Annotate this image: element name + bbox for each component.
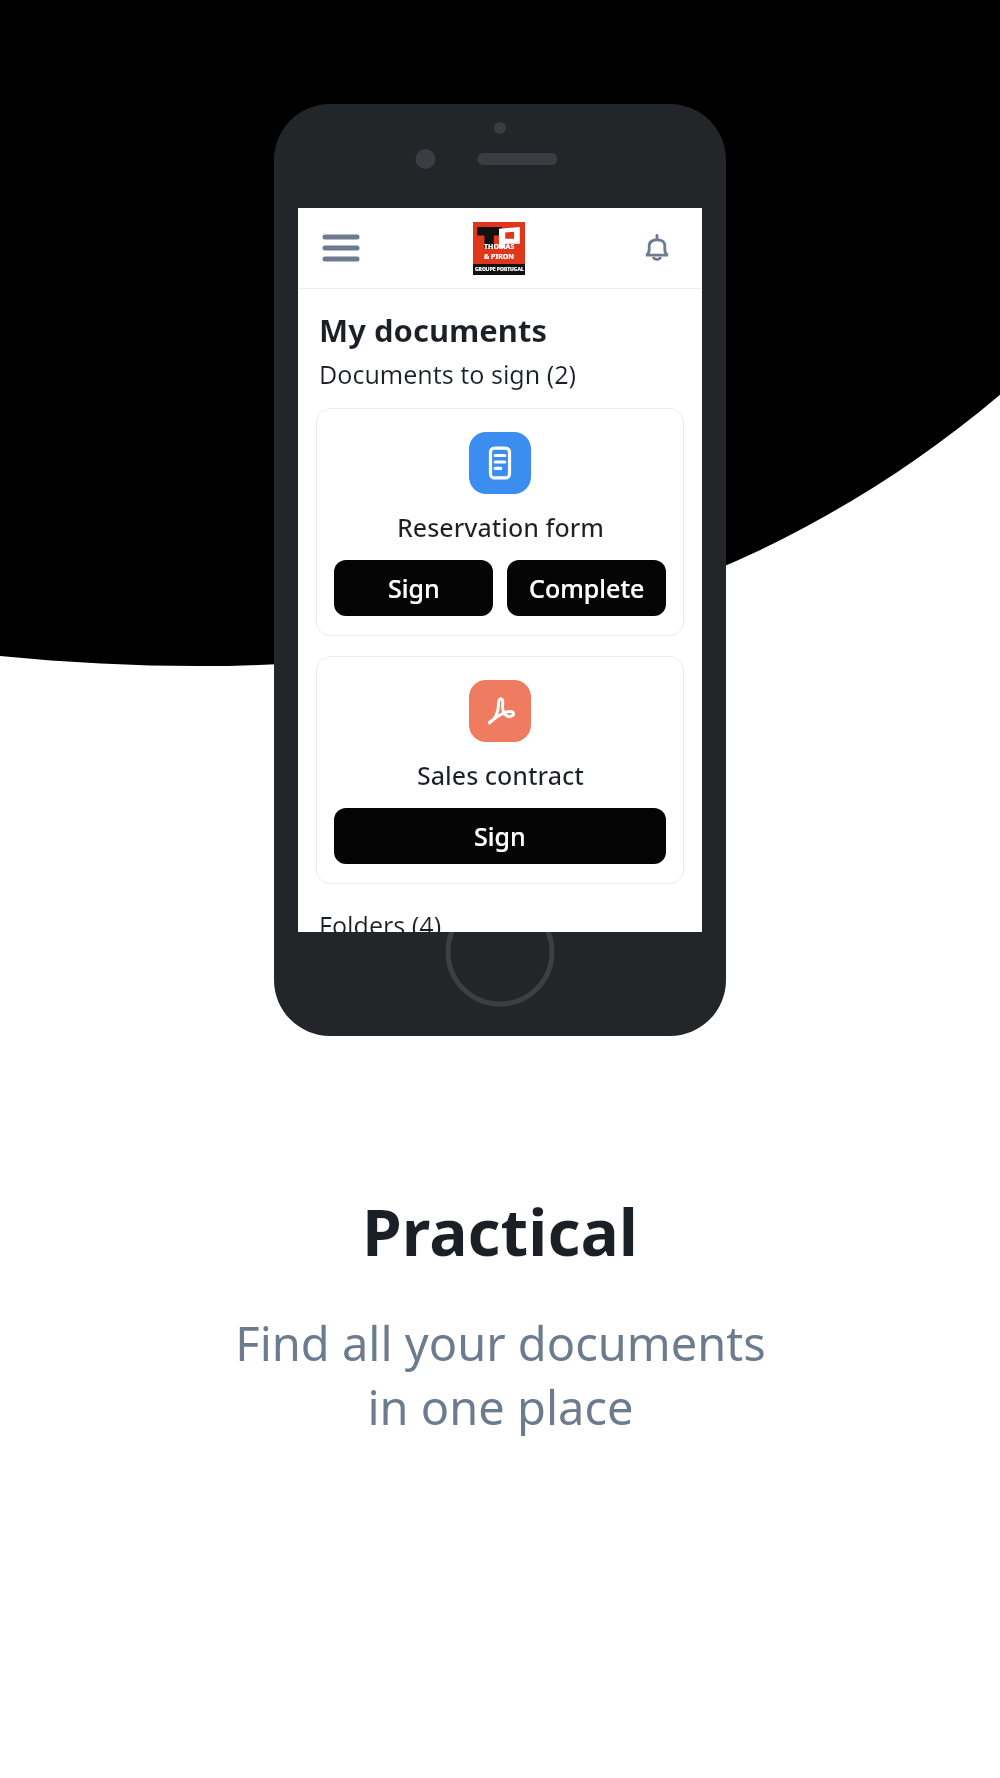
staticText: Sign xyxy=(388,571,440,605)
button[interactable]: Menu xyxy=(318,225,364,271)
staticText: Reservation form xyxy=(397,510,604,544)
staticText: THOMAS xyxy=(484,242,515,252)
staticText: Folders (4) xyxy=(319,908,442,932)
button[interactable]: Sales contract xyxy=(316,656,684,884)
button[interactable]: Sign xyxy=(334,560,493,616)
staticText: Practical xyxy=(362,1188,638,1275)
staticText: Find all your documents in one place xyxy=(235,1311,766,1439)
staticText: GROUPE PORTUGAL xyxy=(475,266,524,273)
button[interactable]: Reservation form xyxy=(316,408,684,636)
staticText: Complete xyxy=(529,571,645,605)
button[interactable]: Notifications xyxy=(634,225,680,271)
button[interactable]: Complete xyxy=(507,560,666,616)
staticText: My documents xyxy=(319,309,548,351)
staticText: Sales contract xyxy=(417,758,584,792)
staticText: Sign xyxy=(474,819,526,853)
button[interactable]: Sign xyxy=(334,808,666,864)
staticText: & PIRON xyxy=(484,252,514,262)
staticText: Documents to sign (2) xyxy=(319,357,576,391)
